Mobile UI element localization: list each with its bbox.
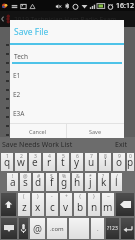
button[interactable]: * [85,173,96,191]
staticText: s [23,175,28,189]
staticText: % [62,173,67,180]
button[interactable]: 4 [43,153,55,171]
button[interactable]: . [91,218,104,239]
button[interactable]: & [72,173,83,191]
staticText: Save File [14,26,49,38]
button[interactable]: Symbols [106,218,119,239]
button[interactable]: E3A [10,104,124,123]
button[interactable]: 5 [57,153,69,171]
button[interactable]: Switch keyboard [1,218,17,239]
staticText: @ [23,173,28,180]
staticText: Exit [115,140,127,150]
staticText: 16:12 [116,1,134,11]
staticText: / [116,173,118,180]
staticText: x [35,200,41,214]
button[interactable]: 9 [113,153,125,171]
button[interactable]: 2 [15,153,27,171]
button[interactable]: 8 [99,153,111,171]
button[interactable]: Backspace [116,193,134,216]
staticText: p [127,155,134,169]
staticText: o [116,155,123,169]
button[interactable]: % [59,173,70,191]
button[interactable]: Voice input [19,218,28,239]
staticText: * [89,173,92,180]
button[interactable]: E1 [10,66,124,85]
staticText: 2 [20,153,23,160]
button[interactable]: 0 [127,153,134,171]
staticText: v [63,200,69,214]
button[interactable] [69,218,89,239]
button[interactable]: ( [18,193,30,216]
staticText: } [93,193,95,200]
button[interactable]: Cancel [10,124,66,138]
staticText: .com [50,225,64,233]
staticText: Save Needs Work List [2,140,73,150]
button[interactable]: + [60,193,72,216]
button[interactable]: 7 [85,153,97,171]
staticText: z [22,200,27,214]
staticText: E2 [13,90,21,99]
staticText: y [74,155,80,169]
button[interactable]: 3 [29,153,41,171]
staticText: @ [33,222,42,236]
button[interactable]: $ [46,173,57,191]
staticText: j [89,175,92,189]
staticText: w [17,155,25,169]
staticText: d [35,175,42,189]
staticText: c [50,200,55,214]
button[interactable]: 6 [71,153,83,171]
button[interactable]: Save Needs Work List [0,137,107,152]
staticText: E1 [13,71,21,80]
staticText: - [51,193,53,200]
button[interactable]: { [74,193,86,216]
staticText: 9 [118,153,121,160]
button[interactable]: - [46,193,58,216]
staticText: 7 [90,153,93,160]
button[interactable]: ~ [102,193,114,216]
staticText: 4 [48,153,51,160]
staticText: r [47,155,52,169]
staticText: # [37,173,41,180]
staticText: 3 [34,153,37,160]
button[interactable]: Shift [1,193,16,216]
button[interactable]: @ [20,173,31,191]
button[interactable]: / [111,173,122,191]
button[interactable]: } [88,193,100,216]
button[interactable]: ! [7,173,18,191]
button[interactable]: 1 [1,153,13,171]
button[interactable]: Enter [121,218,134,239]
staticText: m [103,200,113,214]
staticText: Tech [14,52,28,61]
staticText: 0 [129,153,132,160]
staticText: e [32,155,38,169]
staticText: 1 [6,153,9,160]
staticText: i [104,155,107,169]
button[interactable]: E2 [10,85,124,104]
button[interactable]: Exit [107,137,135,152]
staticText: ( [23,193,25,200]
staticText: ? [102,173,105,180]
button[interactable]: Navigate up [0,11,12,27]
staticText: t [61,155,65,169]
button[interactable]: ) [32,193,44,216]
staticText: q [4,155,11,169]
staticText: 5 [62,153,65,160]
staticText: h [74,175,81,189]
staticText: b [77,200,84,214]
staticText: k [101,175,107,189]
staticText: f [50,175,54,189]
button[interactable]: Save [67,124,124,138]
button[interactable]: @ [30,218,45,239]
button[interactable]: .com [47,218,67,239]
button[interactable]: ? [98,173,109,191]
staticText: n [91,200,98,214]
button[interactable]: # [33,173,44,191]
staticText: ?123 [107,225,118,232]
staticText: 8 [104,153,107,160]
staticText: Cancel [29,128,47,135]
staticText: ) [37,193,39,200]
staticText: + [65,193,68,200]
staticText: ~ [107,193,110,200]
staticText: $ [50,173,53,180]
staticText: ! [12,173,14,180]
